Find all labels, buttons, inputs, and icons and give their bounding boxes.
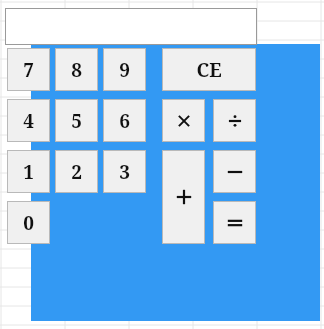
button[interactable]: 6 [103,99,146,142]
button[interactable]: 8 [55,48,98,91]
staticText: 2 [71,159,82,185]
staticText: 1 [23,159,34,185]
staticText: 0 [23,210,34,236]
button[interactable]: Subtract [213,150,256,193]
button[interactable]: 0 [7,201,50,244]
button[interactable]: Equals [213,201,256,244]
staticText: 5 [71,108,82,134]
button[interactable] [5,8,257,45]
button[interactable]: Divide [213,99,256,142]
button[interactable]: 9 [103,48,146,91]
staticText: 4 [23,108,34,134]
button[interactable]: 3 [103,150,146,193]
staticText: 3 [119,159,130,185]
staticText: 8 [71,57,82,83]
button[interactable]: 1 [7,150,50,193]
staticText: CE [196,57,222,83]
button[interactable]: 2 [55,150,98,193]
button[interactable]: Multiply [162,99,205,142]
button[interactable]: Add [162,150,205,244]
staticText: 7 [23,57,34,83]
staticText: 9 [119,57,130,83]
button[interactable]: 5 [55,99,98,142]
button[interactable]: 7 [7,48,50,91]
button[interactable]: 4 [7,99,50,142]
staticText: 6 [119,108,130,134]
button[interactable]: CE [162,48,256,91]
